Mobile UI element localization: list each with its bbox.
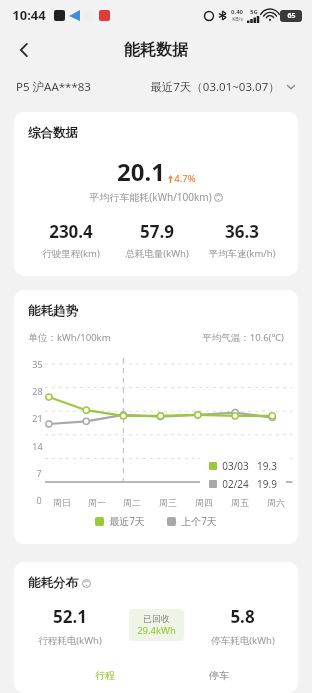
staticText: 最近7天: [109, 514, 145, 528]
staticText: 36.3: [225, 220, 259, 243]
staticText: 平均行车能耗(kWh/100km): [89, 190, 212, 204]
staticText: 能耗趋势: [28, 303, 78, 319]
staticText: 最近7天（03.01~03.07）: [150, 79, 280, 95]
staticText: 230.4: [49, 220, 93, 243]
staticText: 总耗电量(kWh): [125, 247, 189, 260]
staticText: 单位：kWh/100km: [28, 331, 111, 344]
staticText: 57.9: [140, 220, 174, 243]
staticText: 65: [287, 11, 296, 21]
staticText: 28: [32, 385, 43, 397]
staticText: 周一: [88, 497, 106, 508]
staticText: 周四: [195, 497, 213, 508]
staticText: 19.3: [257, 459, 277, 473]
button[interactable]: P5 沪AA***83: [16, 79, 91, 95]
staticText: 29.4kWh: [137, 624, 176, 637]
staticText: 上个7天: [181, 514, 217, 528]
staticText: 35: [32, 358, 43, 370]
button[interactable]: 最近7天: [95, 514, 145, 528]
staticText: 行驶里程(km): [42, 247, 100, 260]
staticText: 周三: [159, 497, 177, 508]
staticText: KB/s: [232, 16, 243, 23]
staticText: 平均气温：10.6(℃): [202, 331, 284, 344]
button[interactable]: 最近7天（03.01~03.07）: [150, 79, 296, 95]
staticText: 周二: [123, 497, 141, 508]
staticText: 52.1: [53, 605, 87, 628]
staticText: 5.8: [230, 605, 255, 628]
staticText: 周六: [267, 497, 285, 508]
staticText: 10:44: [12, 6, 46, 24]
staticText: 02/24: [222, 477, 249, 491]
staticText: 行程: [95, 669, 115, 682]
staticText: 0: [36, 494, 42, 506]
staticText: 能耗数据: [124, 40, 188, 60]
staticText: 19.9: [257, 477, 277, 491]
staticText: 行程耗电(kWh): [38, 634, 102, 647]
button[interactable]: Back: [6, 32, 42, 68]
staticText: 停车耗电(kWh): [211, 634, 275, 647]
staticText: 14: [32, 440, 43, 452]
button[interactable]: 上个7天: [167, 514, 217, 528]
staticText: 21: [32, 412, 43, 424]
staticText: 周日: [53, 497, 71, 508]
staticText: 0.40: [231, 8, 243, 16]
staticText: 已回收: [143, 613, 170, 624]
staticText: 能耗分布: [28, 575, 78, 591]
staticText: 周五: [231, 497, 249, 508]
staticText: 20.1: [117, 155, 165, 188]
staticText: 7: [36, 467, 42, 479]
staticText: 03/03: [222, 459, 249, 473]
staticText: 平均车速(km/h): [208, 247, 276, 260]
staticText: 停车: [209, 669, 229, 682]
staticText: 综合数据: [28, 125, 78, 141]
staticText: 4.7%: [174, 172, 196, 185]
staticText: 5G: [250, 8, 258, 16]
